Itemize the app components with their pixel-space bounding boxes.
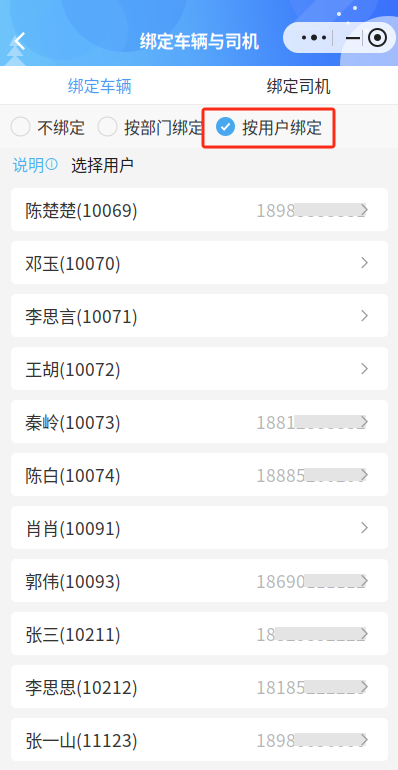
button[interactable]: 陈白(10074) <box>11 453 388 496</box>
staticText: 王胡(10072) <box>25 356 121 381</box>
button[interactable]: 按用户绑定 <box>216 105 322 148</box>
button[interactable]: 不绑定 <box>11 105 85 148</box>
staticText: 绑定车辆 <box>67 73 131 97</box>
staticText: 18325852222 <box>256 621 366 646</box>
staticText: 选择用户 <box>71 152 135 176</box>
button[interactable]: 绑定车辆 <box>0 66 199 104</box>
staticText: 18812888882 <box>256 409 366 434</box>
staticText: 陈楚楚(10069) <box>25 197 138 222</box>
button[interactable]: 说明 <box>12 152 57 176</box>
staticText: 说明 <box>12 152 44 176</box>
button[interactable]: 秦岭(10073) <box>11 400 388 443</box>
staticText: 秦岭(10073) <box>25 409 121 434</box>
staticText: 18983888881 <box>256 197 366 222</box>
staticText: i <box>50 158 52 170</box>
staticText: 李思思(10212) <box>25 674 138 699</box>
staticText: 按用户绑定 <box>242 115 322 138</box>
button[interactable]: 王胡(10072) <box>11 347 388 390</box>
button[interactable]: 李思言(10071) <box>11 294 388 337</box>
staticText: 李思言(10071) <box>25 303 138 328</box>
button[interactable]: 李思思(10212) <box>11 665 388 708</box>
staticText: 绑定司机 <box>266 73 330 97</box>
staticText: 18690111112 <box>256 568 366 593</box>
staticText: 张三(10211) <box>25 621 121 646</box>
button[interactable]: 按部门绑定 <box>98 105 204 148</box>
button[interactable]: 陈楚楚(10069) <box>11 188 388 231</box>
button[interactable]: 张一山(11123) <box>11 718 388 761</box>
staticText: 肖肖(10091) <box>25 515 121 540</box>
staticText: 邓玉(10070) <box>25 250 121 275</box>
staticText: 郭伟(10093) <box>25 568 121 593</box>
button[interactable]: More options <box>283 22 396 53</box>
button[interactable]: 绑定司机 <box>199 66 398 104</box>
staticText: 陈白(10074) <box>25 462 121 487</box>
staticText: 按部门绑定 <box>124 115 204 138</box>
button[interactable]: 张三(10211) <box>11 612 388 655</box>
button[interactable]: Back <box>0 21 40 61</box>
button[interactable]: 郭伟(10093) <box>11 559 388 602</box>
staticText: 不绑定 <box>37 115 85 138</box>
staticText: 18185222223 <box>256 674 366 699</box>
staticText: 18980056000 <box>256 727 366 752</box>
staticText: 18885200200 <box>256 462 366 487</box>
staticText: 绑定车辆与司机 <box>139 27 258 53</box>
staticText: 张一山(11123) <box>25 727 138 752</box>
button[interactable]: 邓玉(10070) <box>11 241 388 284</box>
button[interactable]: 肖肖(10091) <box>11 506 388 549</box>
